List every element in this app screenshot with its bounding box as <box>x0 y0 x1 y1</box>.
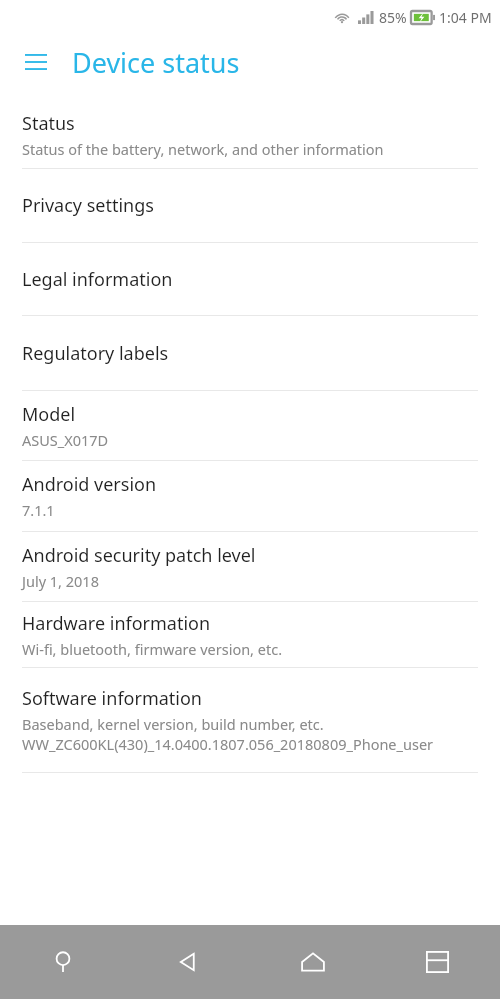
staticText: ASUS_X017D <box>22 430 109 450</box>
staticText: Wi-fi, bluetooth, firmware version, etc. <box>22 639 283 659</box>
button[interactable]: Status <box>0 102 500 168</box>
button[interactable]: Open navigation menu <box>14 40 58 84</box>
staticText: 1:04 PM <box>439 8 492 27</box>
staticText: July 1, 2018 <box>22 571 99 591</box>
button[interactable]: Software information <box>0 668 500 772</box>
staticText: Baseband, kernel version, build number, … <box>22 714 434 754</box>
staticText: Device status <box>72 44 240 81</box>
button[interactable]: Google Assistant <box>0 925 125 999</box>
button[interactable]: Back <box>125 925 250 999</box>
button[interactable]: Privacy settings <box>0 169 500 242</box>
staticText: 85% <box>379 8 407 27</box>
button[interactable]: Home <box>250 925 375 999</box>
button[interactable]: Android version <box>0 461 500 531</box>
staticText: Status <box>22 111 75 136</box>
staticText: 7.1.1 <box>22 500 55 520</box>
button[interactable]: Regulatory labels <box>0 316 500 390</box>
button[interactable]: Legal information <box>0 243 500 315</box>
staticText: Legal information <box>22 267 173 292</box>
staticText: Status of the battery, network, and othe… <box>22 139 384 159</box>
button[interactable]: Model <box>0 391 500 460</box>
staticText: Android security patch level <box>22 543 256 568</box>
staticText: Privacy settings <box>22 193 154 218</box>
button[interactable]: Android security patch level <box>0 532 500 601</box>
button[interactable]: Recent apps <box>375 925 500 999</box>
staticText: Regulatory labels <box>22 341 169 366</box>
staticText: Android version <box>22 472 157 497</box>
staticText: Hardware information <box>22 611 211 636</box>
staticText: Model <box>22 402 76 427</box>
button[interactable]: Hardware information <box>0 602 500 667</box>
staticText: Software information <box>22 686 202 711</box>
